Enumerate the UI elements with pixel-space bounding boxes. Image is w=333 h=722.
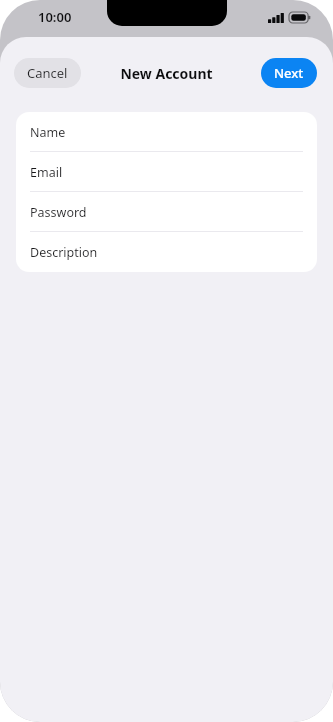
staticText: New Account [120,64,213,83]
button[interactable]: Name [16,112,317,152]
button[interactable]: Email [16,152,317,192]
staticText: Name [30,124,66,141]
staticText: Cancel [27,64,68,82]
button[interactable]: Password [16,192,317,232]
button[interactable]: Next [261,58,317,88]
staticText: Email [30,164,63,181]
other: Battery [289,12,311,23]
button[interactable]: Cancel [14,58,81,88]
staticText: Next [274,64,304,82]
other: Cellular signal [268,13,284,23]
staticText: Description [30,244,98,261]
staticText: Password [30,204,87,221]
staticText: 10:00 [38,8,72,26]
button[interactable]: Description [16,232,317,272]
